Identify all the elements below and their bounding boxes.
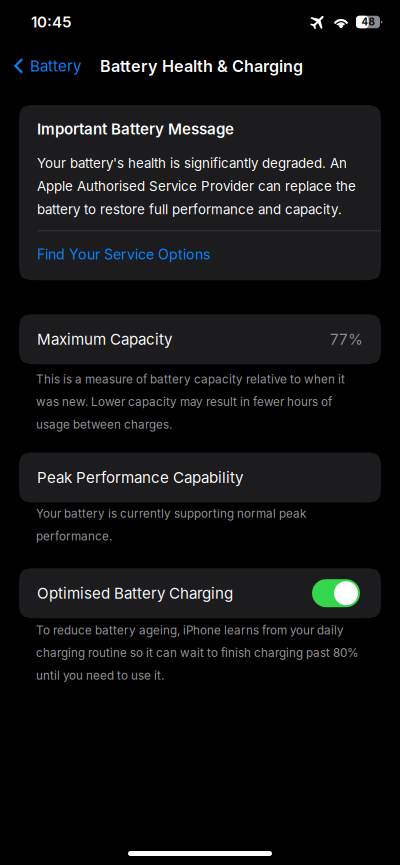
staticText: Find Your Service Options: [37, 246, 211, 263]
staticText: 48: [361, 16, 374, 28]
staticText: 77%: [330, 330, 363, 348]
staticText: Peak Performance Capability: [37, 468, 243, 487]
staticText: To reduce battery ageing, iPhone learns …: [36, 623, 358, 682]
staticText: Battery Health & Charging: [100, 56, 303, 76]
staticText: Maximum Capacity: [37, 330, 172, 348]
staticText: Your battery's health is significantly d…: [37, 155, 356, 217]
staticText: Your battery is currently supporting nor…: [36, 506, 306, 543]
button[interactable]: Find Your Service Options: [19, 245, 381, 263]
button[interactable]: Battery: [0, 44, 100, 88]
staticText: Battery: [30, 57, 81, 75]
staticText: This is a measure of battery capacity re…: [36, 372, 345, 431]
staticText: Optimised Battery Charging: [37, 584, 233, 602]
staticText: Important Battery Message: [37, 120, 234, 138]
staticText: 10:45: [31, 13, 72, 31]
button[interactable]: Optimised Battery Charging: [312, 579, 360, 607]
